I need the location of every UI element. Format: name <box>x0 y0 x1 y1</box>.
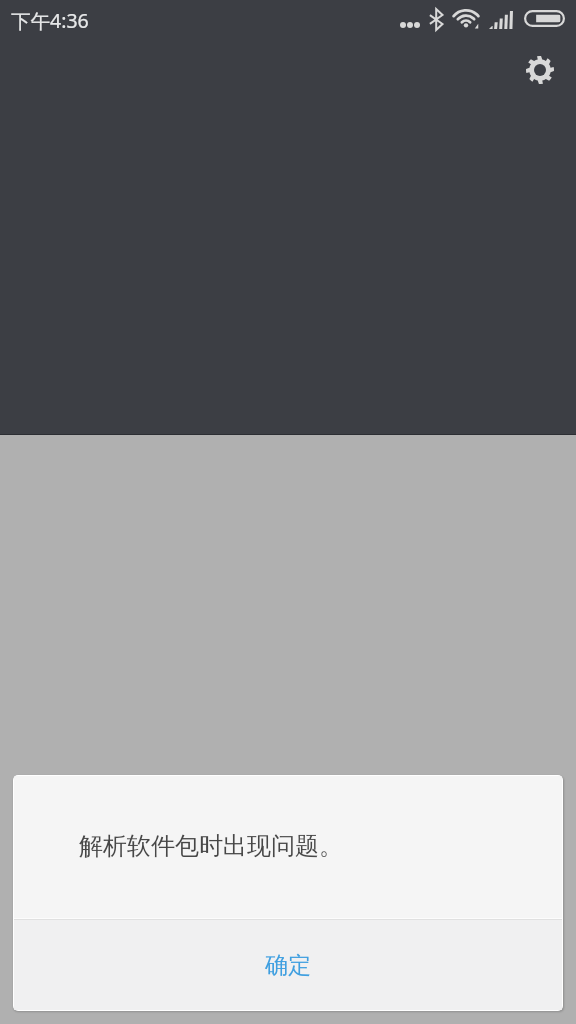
button[interactable]: Settings <box>514 44 566 96</box>
staticText: 确定 <box>265 951 311 980</box>
button[interactable]: 确定 <box>14 920 562 1010</box>
staticText: 解析软件包时出现问题。 <box>79 831 343 861</box>
staticText: 下午4:36 <box>11 7 89 34</box>
